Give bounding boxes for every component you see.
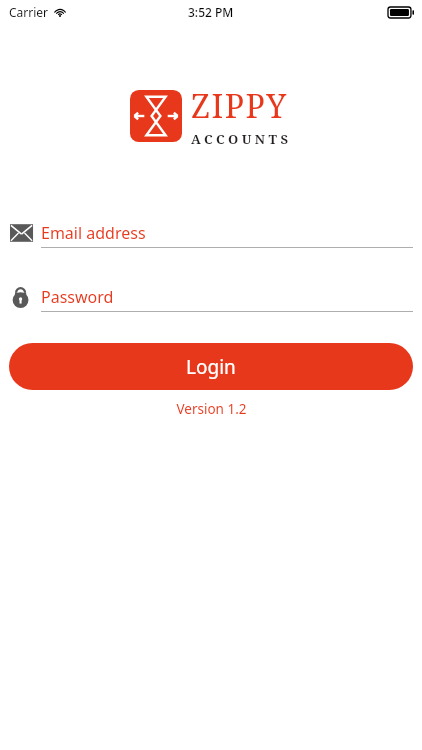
staticText: Email address [41,222,146,244]
button[interactable]: Version 1.2 [0,400,422,418]
staticText: ACCOUNTS [191,130,292,148]
staticText: Carrier [9,4,49,20]
other: Email address [10,222,34,244]
staticText: 3:52 PM [188,4,234,20]
button[interactable]: Password [10,286,413,312]
other: Zippy Accounts logo [130,90,182,142]
staticText: Password [41,286,114,308]
staticText: Login [186,354,236,380]
staticText: Version 1.2 [176,400,247,418]
other: Password [10,286,34,308]
staticText: ZIPPY [191,84,288,128]
button[interactable]: Email address [10,222,413,248]
button[interactable]: Login [9,343,413,390]
